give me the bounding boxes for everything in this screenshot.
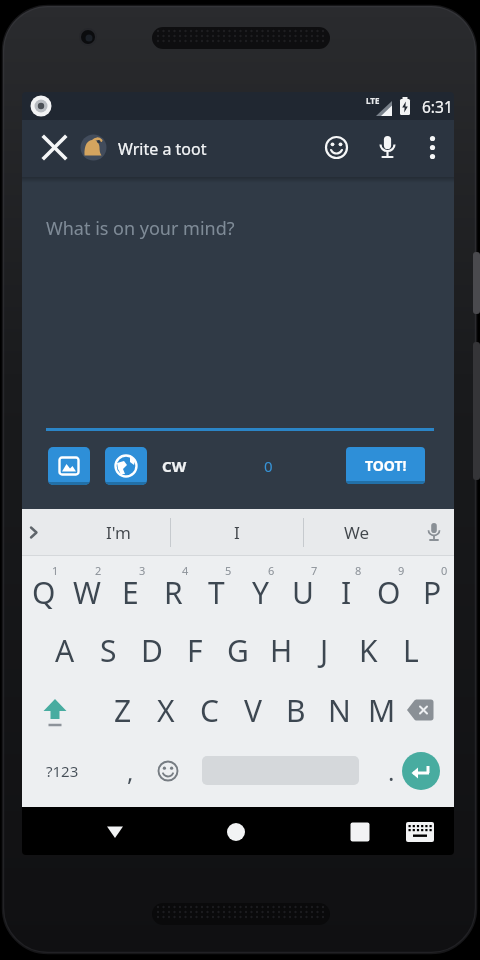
button[interactable] [48,447,90,485]
button[interactable]: F [174,623,216,677]
button[interactable]: I [325,565,367,619]
staticText: I'm [106,521,131,544]
button[interactable]: L [390,623,432,677]
button[interactable] [22,519,48,546]
staticText: 9 [398,563,405,578]
button[interactable] [105,447,147,485]
staticText: C [200,690,219,731]
staticText: A [55,630,75,671]
staticText: G [227,630,249,671]
staticText: D [141,630,163,671]
button[interactable]: Y [239,565,281,619]
staticText: Z [114,690,132,731]
button[interactable]: B [275,683,317,737]
button[interactable]: J [303,623,345,677]
button[interactable] [218,814,254,850]
staticText: 8 [355,563,362,578]
staticText: 3 [139,563,146,578]
button[interactable] [402,752,440,790]
button[interactable]: Z [102,683,144,737]
staticText: Y [252,572,269,613]
staticText: R [164,572,183,613]
button[interactable]: , [114,752,146,790]
button[interactable] [33,688,77,732]
button[interactable]: V [232,683,274,737]
staticText: V [244,690,262,731]
staticText: X [157,690,175,731]
staticText: 2 [95,563,102,578]
staticText: 4 [182,563,189,578]
button[interactable] [150,753,186,789]
staticText: . [388,755,395,788]
staticText: P [423,572,442,613]
staticText: I [234,521,240,544]
button[interactable]: D [131,623,173,677]
button[interactable]: W [66,565,108,619]
staticText: T [208,572,225,613]
button[interactable] [369,129,406,166]
button[interactable]: E [109,565,151,619]
staticText: 7 [311,563,318,578]
staticText: J [320,630,329,671]
button[interactable]: X [145,683,187,737]
button[interactable]: ?123 [40,752,84,790]
button[interactable]: Q [23,565,65,619]
button[interactable]: O [368,565,410,619]
button[interactable]: U [282,565,324,619]
staticText: L [403,630,419,671]
button[interactable] [398,688,442,732]
staticText: M [368,690,396,731]
button[interactable] [318,129,355,166]
button[interactable]: C [188,683,230,737]
button[interactable]: S [87,623,129,677]
staticText: W [73,572,101,613]
staticText: O [377,572,401,613]
button[interactable] [420,519,448,547]
staticText: E [122,572,139,613]
staticText: H [270,630,293,671]
button[interactable]: G [217,623,259,677]
button[interactable]: I [197,509,277,556]
staticText: CW [162,456,187,476]
staticText: U [292,572,314,613]
staticText: TOOT! [365,456,407,475]
button[interactable] [80,134,107,161]
button[interactable] [97,814,133,850]
button[interactable] [404,817,436,847]
button[interactable] [414,129,451,166]
staticText: LTE [366,95,380,106]
button[interactable]: H [260,623,302,677]
staticText: I [341,572,352,613]
staticText: What is on your mind? [46,216,235,241]
staticText: 1 [52,563,59,578]
staticText: 0 [264,456,273,476]
button[interactable] [36,129,73,166]
button[interactable] [342,814,378,850]
staticText: K [359,630,378,671]
staticText: S [100,630,117,671]
button[interactable]: R [152,565,194,619]
button[interactable]: I'm [78,509,158,556]
staticText: We [344,521,370,544]
button[interactable]: . [375,752,407,790]
button[interactable]: TOOT! [346,447,425,484]
button[interactable]: M [361,683,403,737]
staticText: B [286,690,306,731]
staticText: 6:31 [422,96,453,117]
button[interactable]: We [317,509,397,556]
button[interactable]: K [347,623,389,677]
staticText: 5 [225,563,232,578]
staticText: 0 [441,563,448,578]
button[interactable]: N [318,683,360,737]
staticText: Write a toot [118,138,207,160]
staticText: N [328,690,351,731]
button[interactable]: CW [154,447,194,485]
button[interactable]: T [195,565,237,619]
staticText: 6 [268,563,275,578]
button[interactable]: P [411,565,453,619]
staticText: , [127,755,134,788]
staticText: ?123 [46,761,79,781]
button[interactable]: A [44,623,86,677]
staticText: Q [32,572,56,613]
